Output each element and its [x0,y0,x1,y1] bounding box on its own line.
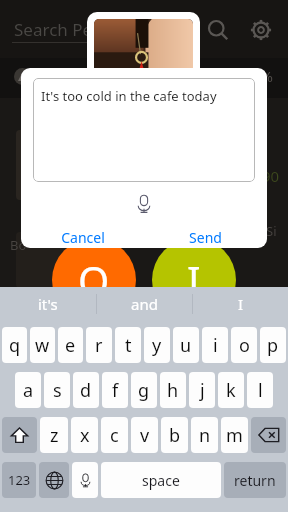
button[interactable]: Cancel [21,226,144,248]
button[interactable]: space [101,462,221,498]
staticText: o [239,333,250,358]
button[interactable]: t [115,327,141,363]
button[interactable]: y [144,327,170,363]
button[interactable]: Attached photo [87,12,200,90]
staticText: g [138,378,150,403]
staticText: e [65,333,76,358]
staticText: j [200,378,205,403]
button[interactable]: Settings [246,15,276,45]
staticText: r [95,333,103,358]
staticText: Si [266,222,277,240]
staticText: u [180,333,192,358]
staticText: m [226,423,243,448]
staticText: I [238,294,244,314]
button[interactable]: j [189,372,215,408]
staticText: s [53,378,62,403]
button[interactable]: i [202,327,228,363]
button[interactable]: f [102,372,128,408]
button[interactable]: Change keyboard language [39,462,69,498]
staticText: Send [189,228,222,247]
button[interactable]: and [97,287,192,320]
staticText: Cancel [61,228,105,247]
button[interactable]: Backspace [251,417,286,453]
staticText: d [80,378,92,403]
button[interactable]: Send [144,226,267,248]
button[interactable]: e [58,327,83,363]
button[interactable]: return [224,462,286,498]
staticText: x [80,423,90,448]
button[interactable]: Voice input [127,187,161,221]
button[interactable]: k [218,372,244,408]
button[interactable]: c [101,417,128,453]
staticText: O [78,253,110,307]
button[interactable]: d [73,372,99,408]
staticText: n [199,423,211,448]
staticText: I [187,253,201,307]
staticText: Search Pe [14,18,93,41]
button[interactable]: It's too cold in the cafe today [33,78,255,182]
button[interactable]: I [193,287,288,320]
button[interactable]: s [44,372,70,408]
staticText: b [169,423,181,448]
staticText: t [125,333,132,358]
staticText: k [226,378,236,403]
button[interactable]: v [131,417,158,453]
button[interactable]: b [161,417,188,453]
staticText: z [50,423,59,448]
button[interactable]: q [2,327,27,363]
button[interactable]: Shift [2,417,37,453]
staticText: y [152,333,162,358]
button[interactable]: h [160,372,186,408]
button[interactable]: n [191,417,218,453]
staticText: w [35,333,50,358]
button[interactable]: w [30,327,55,363]
staticText: return [234,471,276,490]
button[interactable]: it's [0,287,96,320]
button[interactable]: Dictation [72,462,98,498]
staticText: 0% [252,66,274,86]
staticText: 0% [36,66,58,86]
staticText: h [167,378,179,403]
button[interactable]: r [86,327,112,363]
button[interactable]: a [15,372,41,408]
staticText: 90 [262,166,280,186]
staticText: Bo [10,236,27,254]
staticText: l [258,378,263,403]
button[interactable]: o [231,327,257,363]
staticText: a [23,378,34,403]
button[interactable]: z [40,417,68,453]
staticText: and [131,294,158,314]
staticText: p [267,333,279,358]
button[interactable]: l [247,372,273,408]
staticText: space [142,471,180,490]
button[interactable]: Search [204,16,232,44]
staticText: v [140,423,150,448]
button[interactable]: x [71,417,98,453]
button[interactable]: g [131,372,157,408]
button[interactable]: 123 [2,462,36,498]
button[interactable]: m [221,417,248,453]
staticText: i [213,333,218,358]
staticText: it's [38,294,58,314]
staticText: c [110,423,119,448]
staticText: f [112,378,119,403]
staticText: It's too cold in the cafe today [41,87,217,105]
staticText: q [9,333,21,358]
staticText: 123 [8,471,31,489]
button[interactable]: u [173,327,199,363]
button[interactable]: p [260,327,286,363]
